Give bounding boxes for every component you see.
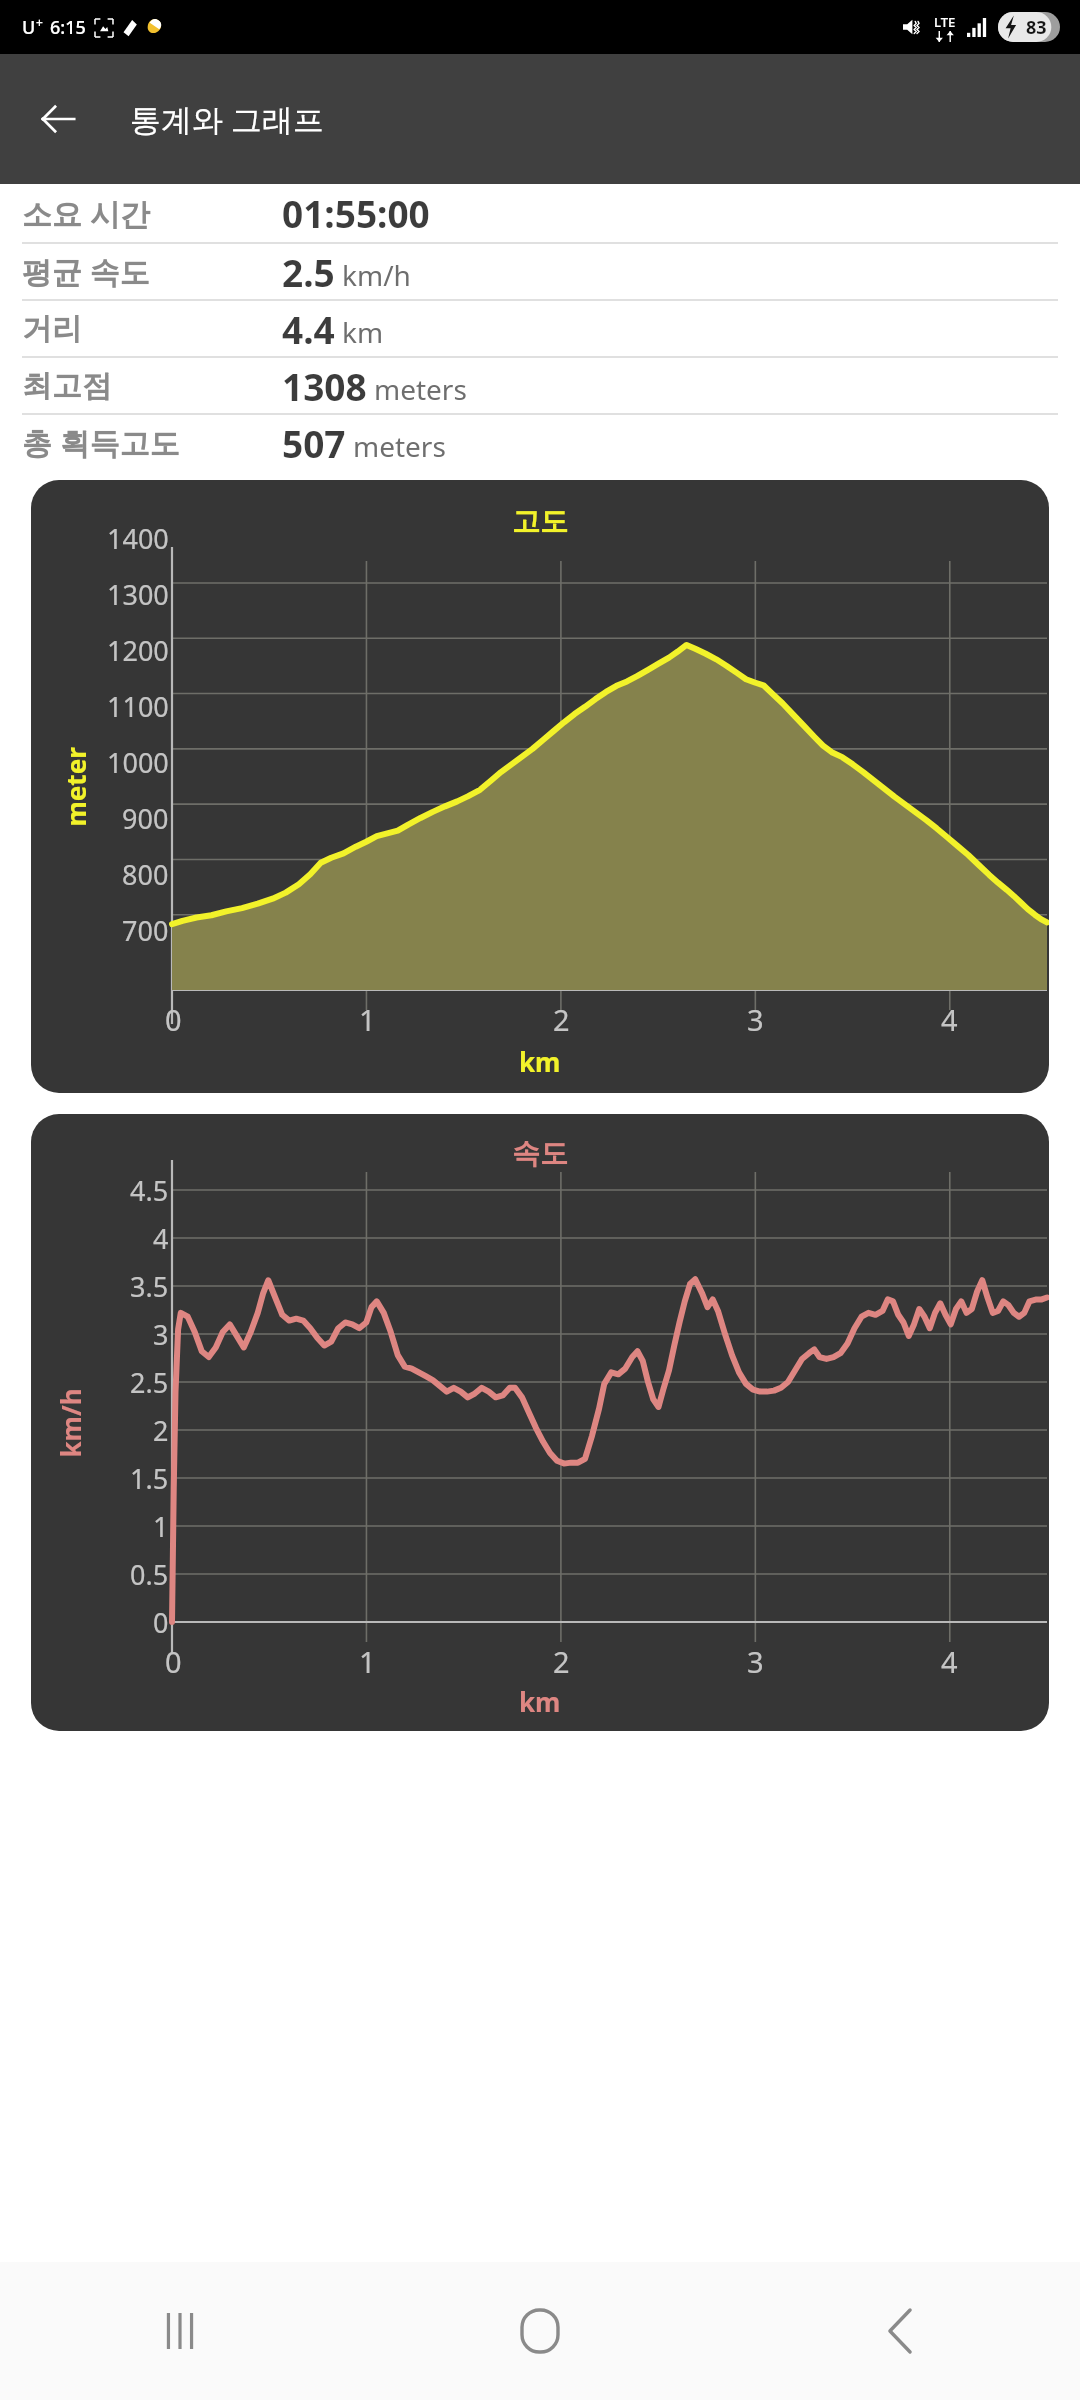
staticText: km/h bbox=[52, 1387, 87, 1457]
staticText: 0.5 bbox=[130, 1556, 169, 1593]
staticText: 800 bbox=[122, 856, 169, 893]
staticText: 507 bbox=[282, 418, 346, 468]
staticText: U bbox=[22, 15, 36, 40]
staticText: 소요 시간 bbox=[22, 193, 282, 234]
button[interactable]: Home bbox=[360, 2262, 720, 2400]
staticText: 최고점 bbox=[22, 367, 282, 405]
staticText: 3.5 bbox=[130, 1268, 169, 1305]
staticText: 4 bbox=[153, 1220, 169, 1257]
staticText: meters bbox=[353, 427, 446, 465]
button[interactable]: 고도 bbox=[31, 480, 1049, 1093]
staticText: meters bbox=[374, 370, 467, 408]
staticText: 3 bbox=[747, 1642, 764, 1681]
staticText: 2 bbox=[553, 1642, 570, 1681]
staticText: 0 bbox=[165, 1642, 182, 1681]
staticText: 4.4 bbox=[282, 304, 335, 354]
staticText: 1100 bbox=[107, 688, 169, 725]
button[interactable]: 총 획득고도 bbox=[22, 415, 1058, 470]
button[interactable]: 소요 시간 bbox=[22, 184, 1058, 242]
staticText: 1400 bbox=[107, 520, 169, 557]
staticText: 거리 bbox=[22, 310, 282, 348]
staticText: 3 bbox=[153, 1316, 169, 1353]
staticText: 4.5 bbox=[130, 1172, 169, 1209]
staticText: LTE bbox=[934, 13, 956, 31]
button[interactable]: 최고점 bbox=[22, 358, 1058, 413]
staticText: km bbox=[519, 1044, 561, 1079]
staticText: 0 bbox=[165, 1000, 182, 1039]
staticText: 1.5 bbox=[130, 1460, 169, 1497]
staticText: 1 bbox=[359, 1000, 376, 1039]
staticText: meter bbox=[57, 746, 92, 826]
button[interactable]: 속도 bbox=[31, 1114, 1049, 1731]
staticText: 2.5 bbox=[282, 247, 335, 297]
button[interactable]: Back bbox=[26, 87, 90, 151]
staticText: 1308 bbox=[282, 361, 367, 411]
staticText: 700 bbox=[122, 912, 169, 949]
staticText: 6:15 bbox=[50, 15, 86, 40]
staticText: 고도 bbox=[512, 504, 568, 539]
staticText: km bbox=[342, 313, 384, 351]
staticText: 평균 속도 bbox=[22, 251, 282, 292]
staticText: 4 bbox=[941, 1000, 958, 1039]
staticText: 2.5 bbox=[130, 1364, 169, 1401]
staticText: 3 bbox=[747, 1000, 764, 1039]
staticText: 속도 bbox=[512, 1136, 568, 1171]
button[interactable]: Recent apps bbox=[0, 2262, 360, 2400]
button[interactable]: 거리 bbox=[22, 301, 1058, 356]
staticText: 83 bbox=[1026, 15, 1047, 40]
staticText: 900 bbox=[122, 800, 169, 837]
staticText: 1300 bbox=[107, 576, 169, 613]
staticText: km/h bbox=[342, 256, 411, 294]
button[interactable]: 평균 속도 bbox=[22, 244, 1058, 299]
staticText: 통계와 그래프 bbox=[130, 98, 325, 140]
staticText: + bbox=[36, 14, 43, 30]
staticText: 4 bbox=[941, 1642, 958, 1681]
staticText: km bbox=[519, 1684, 561, 1719]
staticText: 1200 bbox=[107, 632, 169, 669]
staticText: 1 bbox=[153, 1508, 169, 1545]
staticText: 0 bbox=[153, 1604, 169, 1641]
staticText: 1000 bbox=[107, 744, 169, 781]
staticText: 총 획득고도 bbox=[22, 422, 282, 463]
staticText: 01:55:00 bbox=[282, 188, 430, 238]
staticText: 2 bbox=[153, 1412, 169, 1449]
staticText: 2 bbox=[553, 1000, 570, 1039]
staticText: 1 bbox=[359, 1642, 376, 1681]
button[interactable]: Back bbox=[720, 2262, 1080, 2400]
